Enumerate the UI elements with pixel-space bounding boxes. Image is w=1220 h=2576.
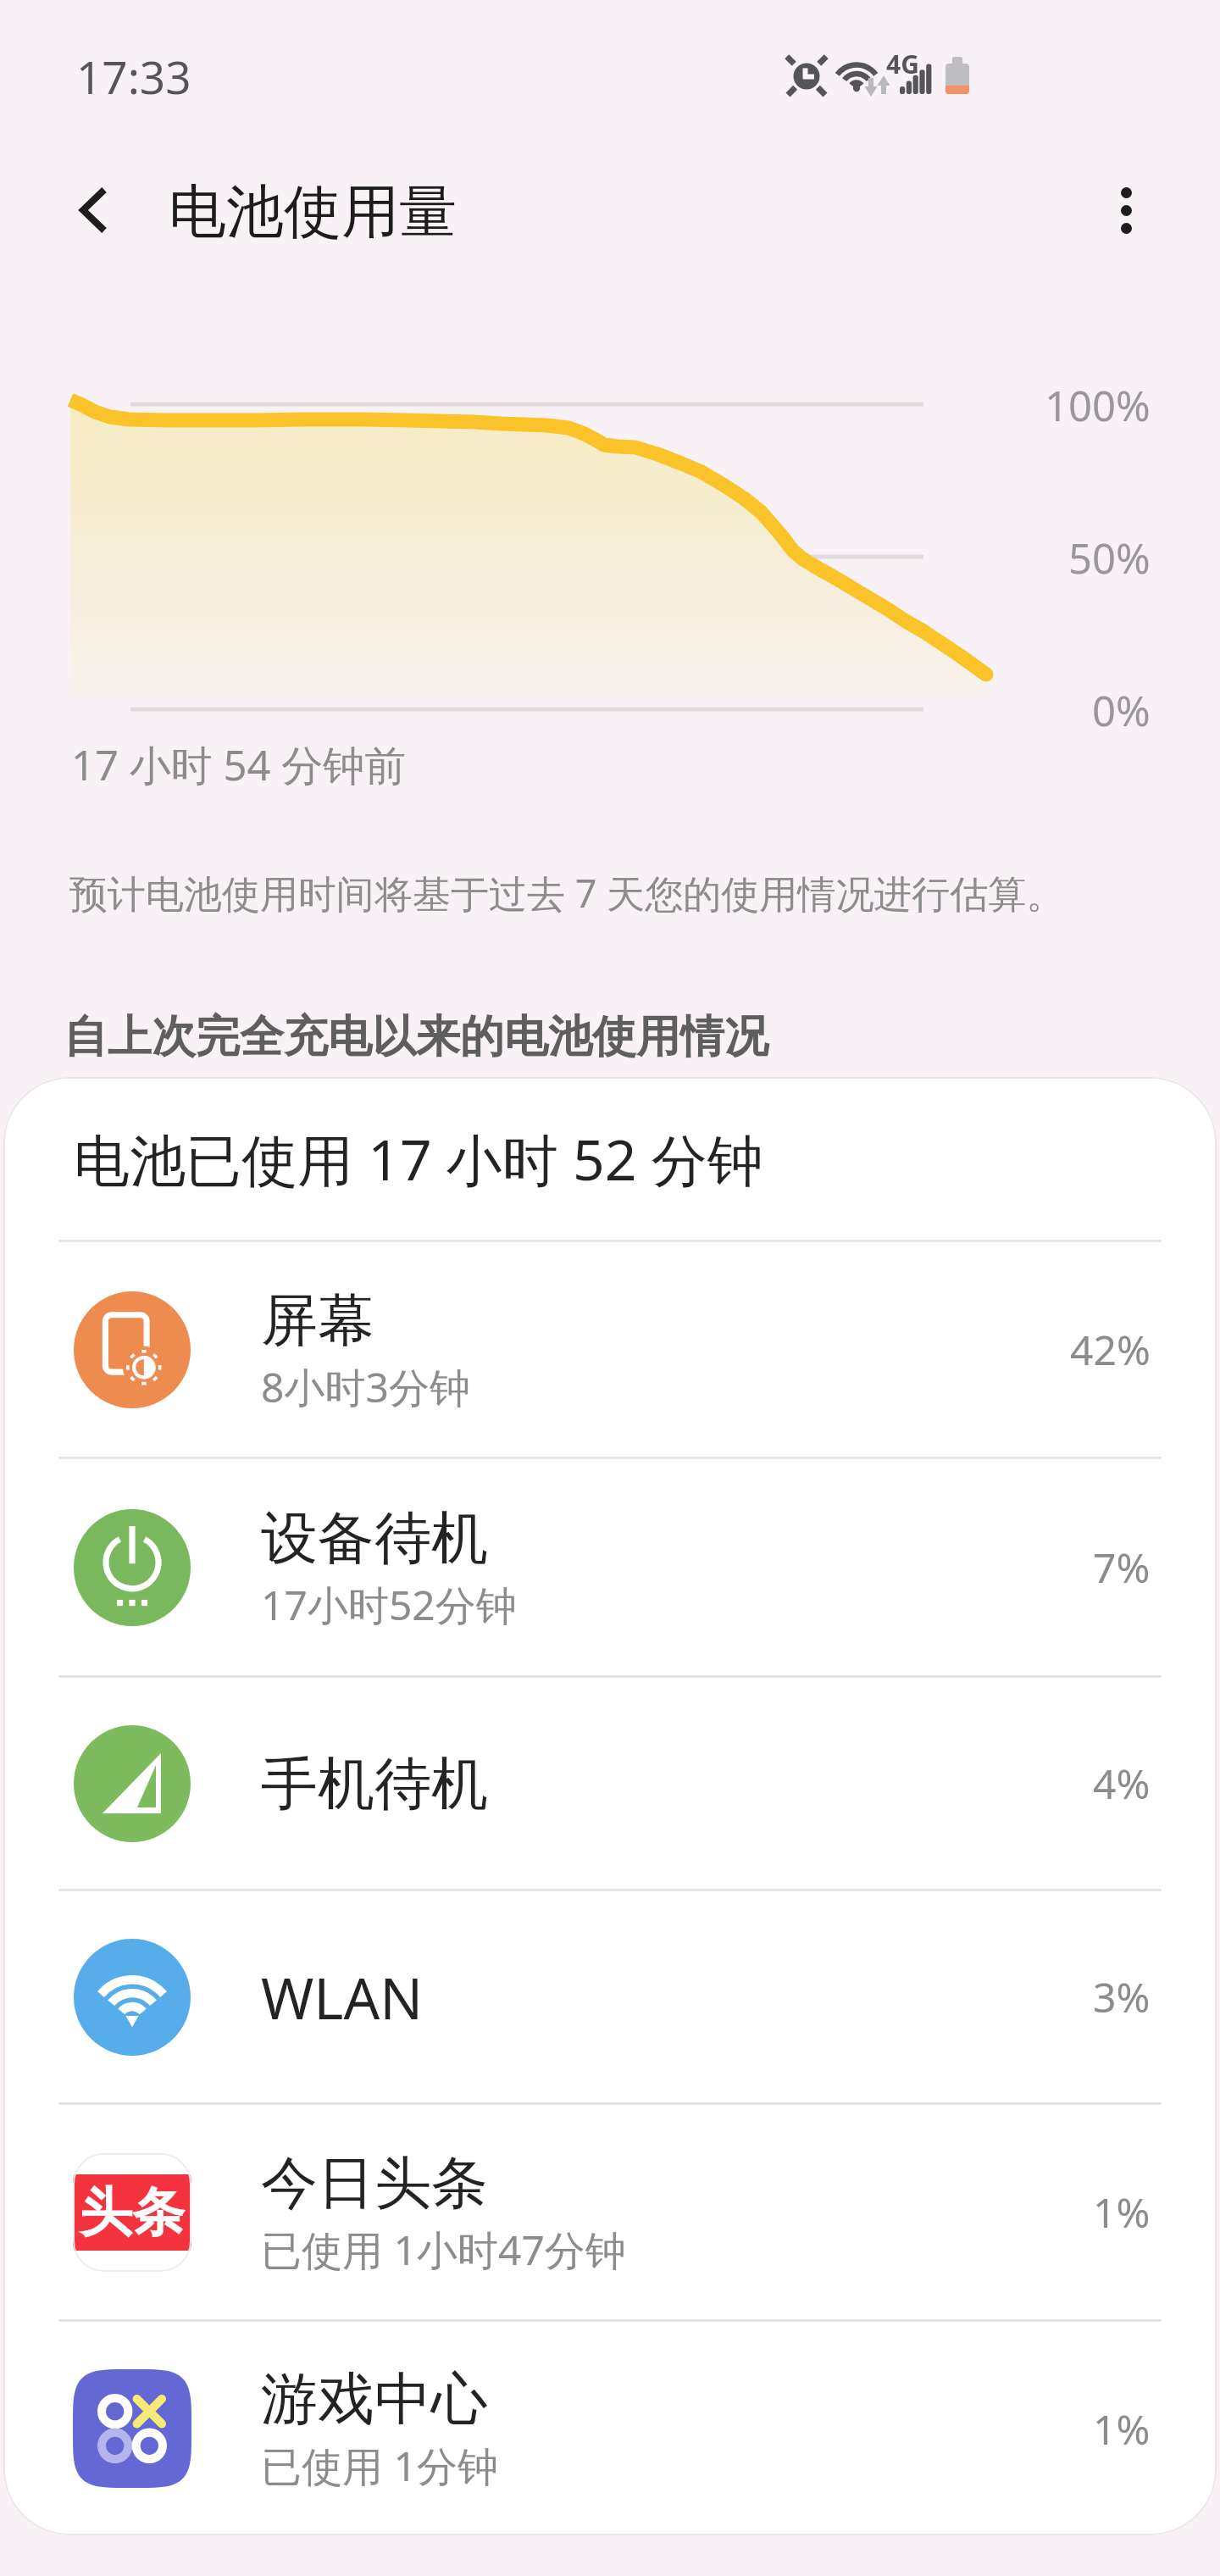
button[interactable]: 头条 xyxy=(3,2105,1217,2319)
staticText: 屏幕 xyxy=(261,1285,374,1356)
staticText: 50% xyxy=(1068,530,1151,586)
staticText: 17小时52分钟 xyxy=(261,1577,517,1633)
staticText: 100% xyxy=(1045,377,1151,434)
staticText: 游戏中心 xyxy=(261,2363,488,2434)
staticText: 今日头条 xyxy=(261,2147,488,2218)
staticText: 头条 xyxy=(80,2179,185,2246)
button[interactable]: 屏幕 xyxy=(3,1242,1217,1457)
staticText: 电池已使用 17 小时 52 分钟 xyxy=(74,1120,763,1196)
staticText: 电池使用量 xyxy=(169,176,457,249)
staticText: 预计电池使用时间将基于过去 7 天您的使用情况进行估算。 xyxy=(69,867,1065,919)
button[interactable]: More options xyxy=(1064,148,1188,272)
staticText: 17:33 xyxy=(76,46,191,107)
button[interactable]: 设备待机 xyxy=(3,1459,1217,1675)
button[interactable]: 游戏中心 xyxy=(3,2322,1217,2535)
button[interactable]: WLAN xyxy=(3,1891,1217,2102)
staticText: 自上次完全充电以来的电池使用情况 xyxy=(64,1009,768,1065)
staticText: 已使用 1小时47分钟 xyxy=(261,2222,626,2278)
staticText: 已使用 1分钟 xyxy=(261,2438,498,2494)
staticText: 0% xyxy=(1092,682,1151,739)
staticText: 手机待机 xyxy=(261,1748,488,1819)
staticText: 4G xyxy=(886,47,919,81)
staticText: 4% xyxy=(1093,1756,1151,1811)
staticText: 17 小时 54 分钟前 xyxy=(71,736,407,793)
staticText: 设备待机 xyxy=(261,1502,488,1574)
button[interactable]: Back xyxy=(31,148,155,272)
staticText: 7% xyxy=(1093,1540,1151,1595)
button[interactable]: 手机待机 xyxy=(3,1678,1217,1889)
staticText: WLAN xyxy=(261,1958,424,2035)
staticText: 1% xyxy=(1093,2185,1151,2240)
staticText: 1% xyxy=(1093,2401,1151,2457)
staticText: 8小时3分钟 xyxy=(261,1359,470,1415)
staticText: 42% xyxy=(1070,1322,1151,1377)
staticText: 3% xyxy=(1093,1969,1151,2024)
